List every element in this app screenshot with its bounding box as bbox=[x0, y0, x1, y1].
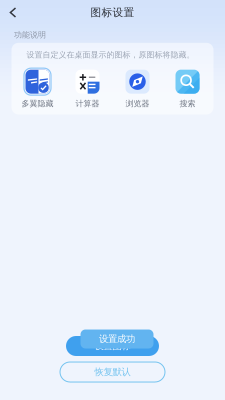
staticText: 恢复默认 bbox=[94, 366, 130, 378]
staticText: 设置自定义在桌面显示的图标，原图标将隐藏。 bbox=[26, 50, 194, 60]
staticText: 多翼隐藏 bbox=[21, 99, 53, 108]
button[interactable]: 设置图标 bbox=[66, 336, 159, 356]
staticText: 图标设置 bbox=[90, 6, 134, 19]
staticText: 设置图标 bbox=[94, 340, 130, 352]
staticText: 搜索 bbox=[179, 99, 195, 108]
button[interactable]: Back bbox=[0, 2, 26, 23]
button[interactable]: 多翼隐藏 bbox=[12, 68, 62, 108]
button[interactable]: 浏览器 bbox=[112, 68, 162, 108]
staticText: 浏览器 bbox=[125, 99, 149, 108]
button[interactable]: 恢复默认 bbox=[60, 362, 165, 382]
button[interactable]: 搜索 bbox=[162, 68, 212, 108]
staticText: 计算器 bbox=[75, 99, 99, 108]
staticText: 设置成功 bbox=[99, 333, 135, 345]
button[interactable]: 计算器 bbox=[62, 68, 112, 108]
staticText: 功能说明 bbox=[14, 30, 46, 40]
